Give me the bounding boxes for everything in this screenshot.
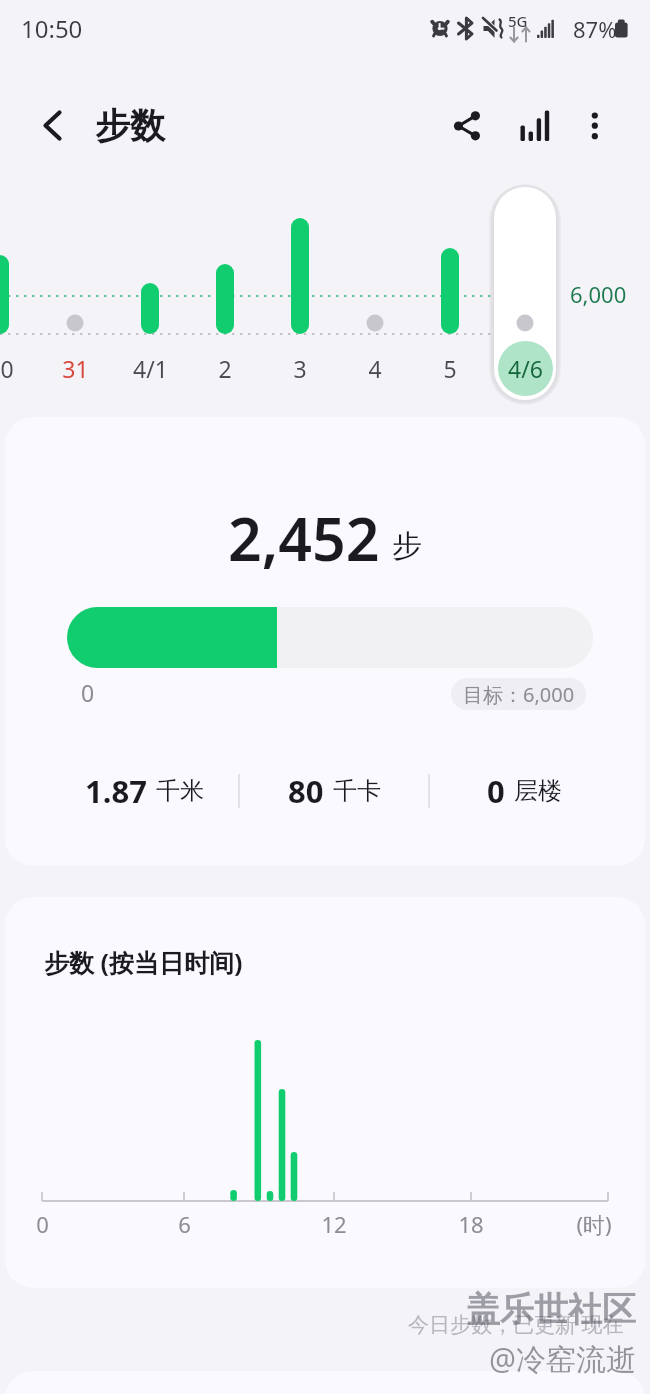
staticText: 1.87 [85,770,147,812]
staticText: 80 [288,770,324,812]
staticText: 18 [458,1209,484,1239]
button[interactable]: 80 [240,765,428,817]
button[interactable]: Share [443,101,493,151]
button[interactable]: Goal 6,000 [451,678,586,710]
staticText: 4/1 [133,353,168,384]
staticText: 层楼 [514,776,562,806]
button[interactable]: 1.87 [51,765,238,817]
staticText: 5G [508,11,528,31]
staticText: 31 [62,353,89,384]
button[interactable]: More options [570,101,620,151]
staticText: 2 [218,353,232,384]
staticText: 步数 (按当日时间) [44,945,243,979]
staticText: @冷窑流逝 [489,1338,636,1379]
staticText: 步 [392,527,422,565]
staticText: 千卡 [333,776,381,806]
button[interactable]: Selected day April 6 [494,187,556,400]
button[interactable]: 0 [430,765,618,817]
staticText: 6,000 [570,279,627,309]
staticText: 4 [368,353,382,384]
staticText: 87% [573,14,617,44]
staticText: 今日步数，已更新 现在 [408,1310,624,1339]
staticText: 千米 [156,776,204,806]
staticText: (时) [576,1209,612,1239]
staticText: 30 [0,353,14,384]
staticText: 5 [443,353,457,384]
staticText: 12 [321,1209,347,1239]
staticText: 0 [36,1209,49,1239]
staticText: 4/6 [508,353,543,384]
staticText: 0 [487,770,505,812]
button[interactable]: Step progress [67,607,593,668]
staticText: 目标：6,000 [463,681,575,708]
button[interactable]: Back [26,96,82,152]
staticText: 步数 [95,104,165,148]
staticText: 3 [293,353,307,384]
staticText: 盖乐世社区 [466,1288,636,1331]
staticText: 4/6 [508,353,543,384]
staticText: 0 [81,677,95,708]
staticText: 2,452 [228,498,380,578]
staticText: 10:50 [21,12,83,45]
button[interactable]: Trends [509,101,559,151]
staticText: 6 [178,1209,191,1239]
